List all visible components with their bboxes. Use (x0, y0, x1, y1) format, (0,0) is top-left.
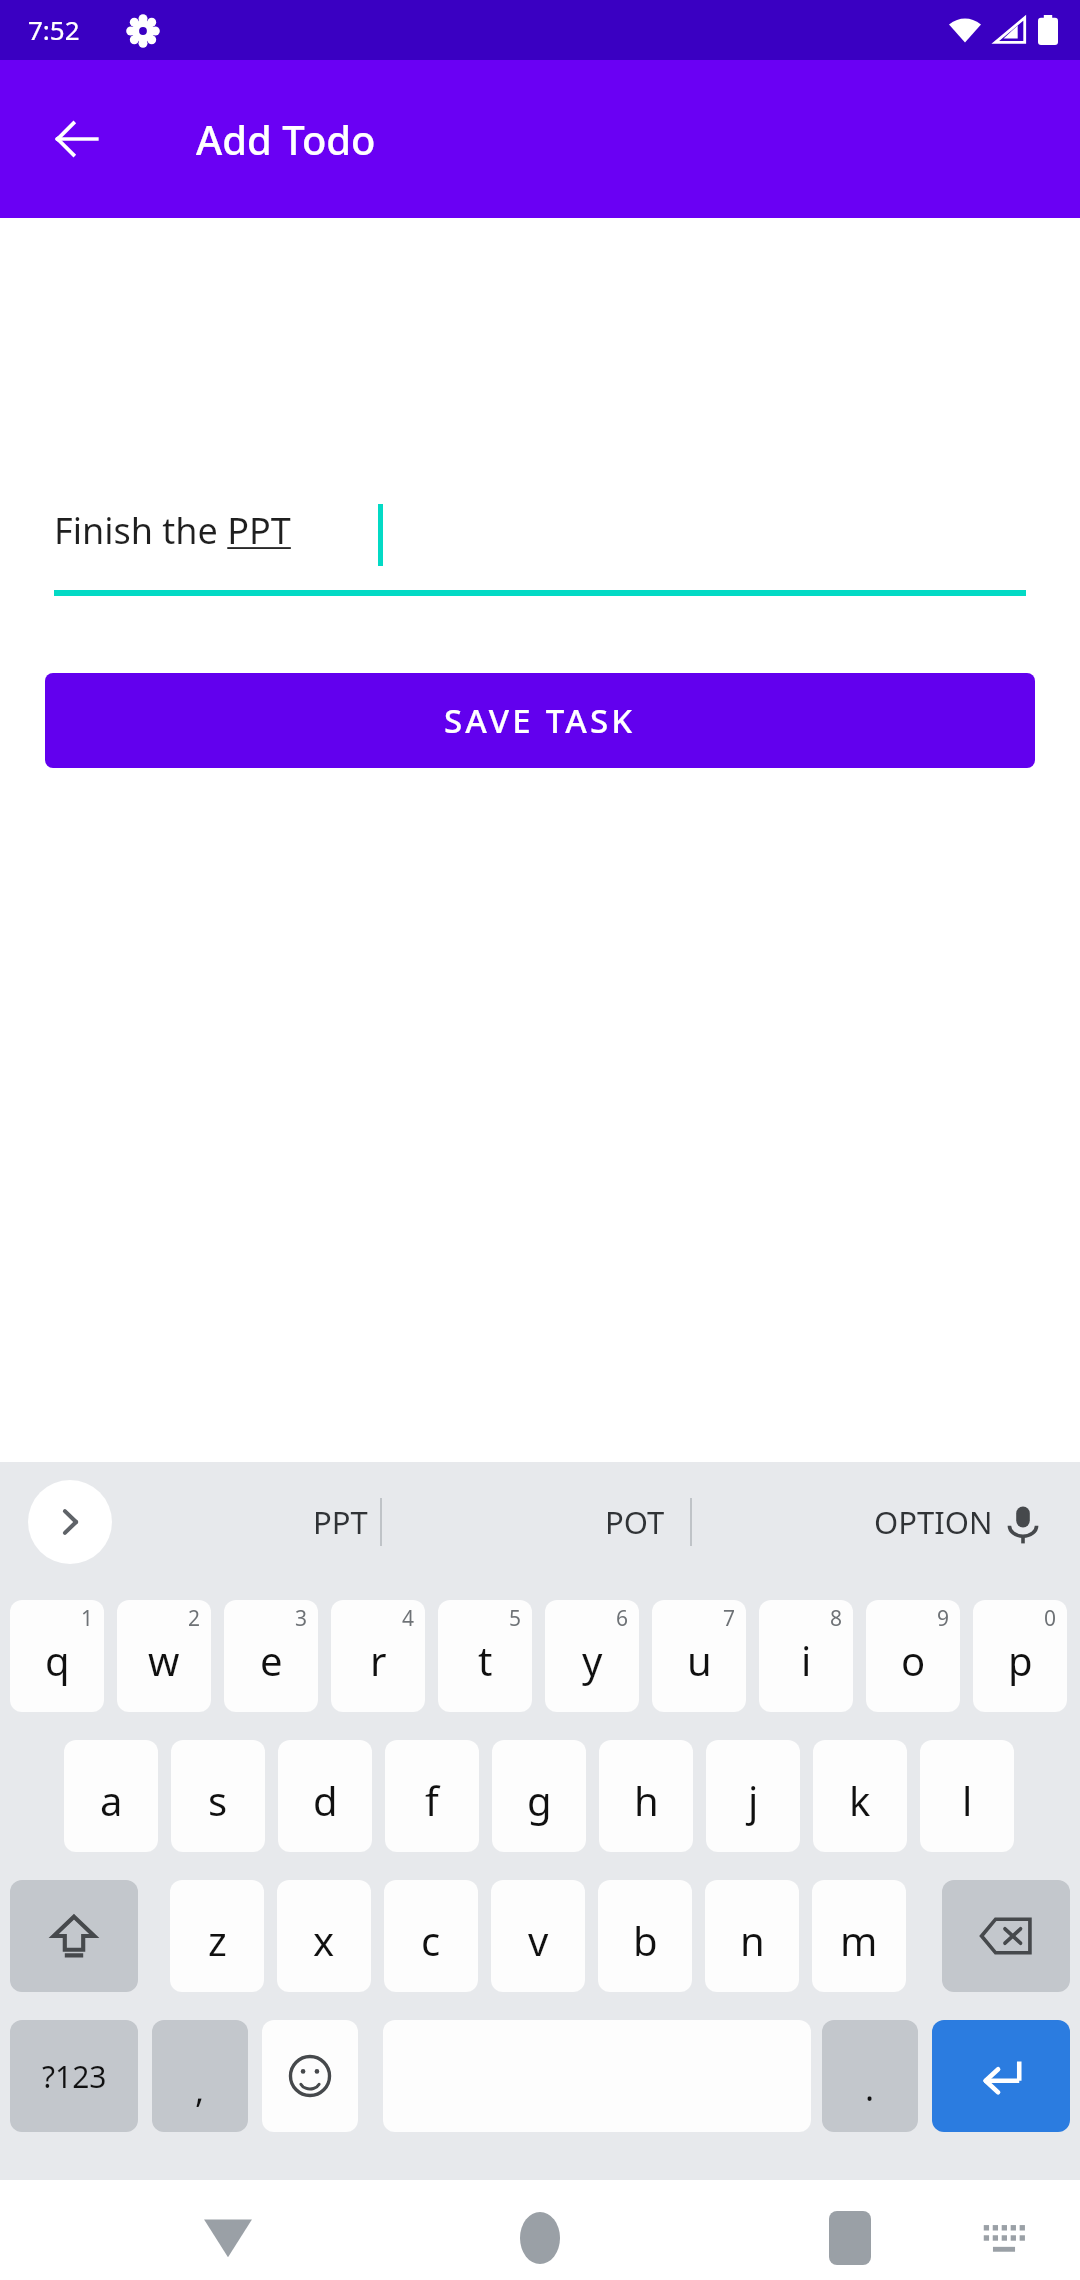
staticText: POT (605, 1501, 665, 1543)
button[interactable]: OPTION (833, 1470, 1033, 1574)
button[interactable]: y (545, 1600, 639, 1712)
button[interactable]: b (598, 1880, 692, 1992)
staticText: 9 (937, 1604, 950, 1633)
staticText: . (865, 2065, 875, 2111)
staticText: OPTION (874, 1501, 993, 1543)
button[interactable]: ?123 (10, 2020, 138, 2132)
staticText: Add Todo (196, 112, 376, 166)
staticText: g (527, 1773, 552, 1827)
button[interactable]: Backspace (942, 1880, 1070, 1992)
button[interactable]: d (278, 1740, 372, 1852)
staticText: , (195, 2067, 205, 2113)
button[interactable]: x (277, 1880, 371, 1992)
button[interactable]: Emoji (262, 2020, 358, 2132)
button[interactable]: t (438, 1600, 532, 1712)
button[interactable]: Home (490, 2188, 590, 2280)
button[interactable]: h (599, 1740, 693, 1852)
staticText: 5 (509, 1604, 522, 1633)
button[interactable]: v (491, 1880, 585, 1992)
button[interactable]: Back (178, 2188, 278, 2280)
staticText: f (425, 1773, 439, 1827)
button[interactable]: a (64, 1740, 158, 1852)
staticText: s (208, 1773, 228, 1827)
button[interactable]: i (759, 1600, 853, 1712)
staticText: 6 (616, 1604, 629, 1633)
button[interactable]: e (224, 1600, 318, 1712)
button[interactable]: More suggestions (28, 1480, 112, 1564)
button[interactable]: Enter (932, 2020, 1070, 2132)
button[interactable]: j (706, 1740, 800, 1852)
staticText: a (100, 1773, 123, 1827)
staticText: 2 (188, 1604, 201, 1633)
button[interactable]: n (705, 1880, 799, 1992)
button[interactable]: Shift (10, 1880, 138, 1992)
staticText: c (421, 1913, 441, 1967)
button[interactable]: POT (535, 1470, 735, 1574)
staticText: o (901, 1633, 926, 1687)
button[interactable]: PPT (240, 1470, 440, 1574)
button[interactable]: w (117, 1600, 211, 1712)
staticText: u (687, 1633, 712, 1687)
button[interactable]: p (973, 1600, 1067, 1712)
button[interactable]: r (331, 1600, 425, 1712)
button[interactable]: s (171, 1740, 265, 1852)
staticText: t (478, 1633, 493, 1687)
staticText: 7:52 (28, 12, 80, 47)
button[interactable]: c (384, 1880, 478, 1992)
button[interactable]: m (812, 1880, 906, 1992)
staticText: SAVE TASK (444, 698, 636, 743)
staticText: w (148, 1633, 180, 1687)
staticText: 1 (81, 1604, 94, 1633)
staticText: v (528, 1913, 549, 1967)
staticText: b (633, 1913, 658, 1967)
staticText: x (313, 1913, 335, 1967)
staticText: h (634, 1773, 659, 1827)
button[interactable]: Recents (800, 2188, 900, 2280)
button[interactable]: k (813, 1740, 907, 1852)
staticText: PPT (313, 1501, 368, 1543)
button[interactable]: . (822, 2020, 918, 2132)
staticText: y (582, 1633, 603, 1687)
staticText: r (370, 1633, 387, 1687)
button[interactable]: l (920, 1740, 1014, 1852)
staticText: n (740, 1913, 765, 1967)
staticText: e (260, 1633, 283, 1687)
button[interactable]: q (10, 1600, 104, 1712)
staticText: d (313, 1773, 338, 1827)
staticText: z (208, 1913, 227, 1967)
button[interactable]: z (170, 1880, 264, 1992)
button[interactable]: , (152, 2020, 248, 2132)
staticText: 8 (830, 1604, 843, 1633)
staticText: 7 (723, 1604, 736, 1633)
button[interactable]: Finish the PPT (54, 500, 1026, 596)
button[interactable]: g (492, 1740, 586, 1852)
button[interactable]: u (652, 1600, 746, 1712)
staticText: i (801, 1633, 812, 1687)
button[interactable]: Voice input (980, 1482, 1066, 1568)
staticText: ?123 (42, 2056, 107, 2097)
button[interactable]: Back (30, 92, 124, 186)
button[interactable]: SAVE TASK (45, 673, 1035, 768)
button[interactable]: o (866, 1600, 960, 1712)
staticText: l (962, 1773, 973, 1827)
button[interactable]: f (385, 1740, 479, 1852)
staticText: j (748, 1773, 759, 1827)
staticText: q (45, 1633, 70, 1687)
staticText: m (840, 1913, 878, 1967)
staticText: p (1008, 1633, 1033, 1687)
staticText: 3 (295, 1604, 308, 1633)
staticText: 0 (1044, 1604, 1057, 1633)
staticText: Finish the PPT (54, 506, 291, 555)
button[interactable]: Switch keyboard (958, 2192, 1050, 2280)
staticText: 4 (402, 1604, 415, 1633)
staticText: k (849, 1773, 871, 1827)
